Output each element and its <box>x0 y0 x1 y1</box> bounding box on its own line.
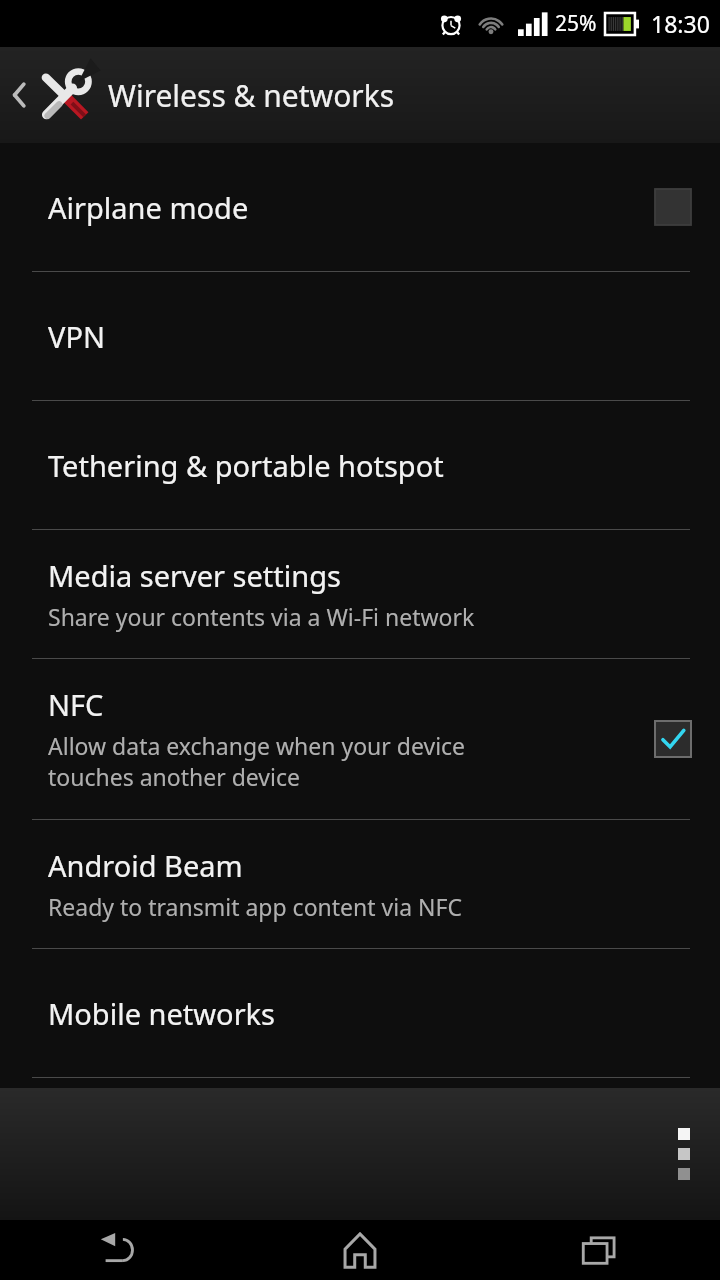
staticText: Media server settings <box>48 556 341 595</box>
button[interactable]: Back <box>0 1220 240 1280</box>
staticText: Mobile networks <box>48 994 275 1033</box>
button[interactable]: Airplane mode <box>0 143 720 271</box>
button[interactable]: Media server settings <box>0 530 720 658</box>
staticText: NFC <box>48 685 104 724</box>
staticText: VPN <box>48 317 105 356</box>
button[interactable]: Mobile networks <box>0 949 720 1077</box>
button[interactable]: Recent apps <box>480 1220 720 1280</box>
button[interactable]: NFC <box>0 659 720 819</box>
button[interactable]: VPN <box>0 272 720 400</box>
button[interactable]: Wireless & networks <box>0 47 720 143</box>
staticText: 25% <box>555 9 597 38</box>
staticText: Allow data exchange when your device tou… <box>48 730 466 793</box>
button[interactable]: Android Beam <box>0 820 720 948</box>
button[interactable]: Tethering & portable hotspot <box>0 401 720 529</box>
staticText: Tethering & portable hotspot <box>48 446 444 485</box>
staticText: Airplane mode <box>48 188 249 227</box>
button[interactable]: Checked <box>652 718 694 760</box>
button[interactable]: More options <box>648 1088 720 1220</box>
staticText: Share your contents via a Wi-Fi network <box>48 601 475 632</box>
button[interactable]: Home <box>240 1220 480 1280</box>
staticText: Wireless & networks <box>108 75 395 116</box>
staticText: Android Beam <box>48 846 243 885</box>
button[interactable]: Unchecked <box>652 186 694 228</box>
staticText: 18:30 <box>651 8 710 39</box>
staticText: Ready to transmit app content via NFC <box>48 891 462 922</box>
